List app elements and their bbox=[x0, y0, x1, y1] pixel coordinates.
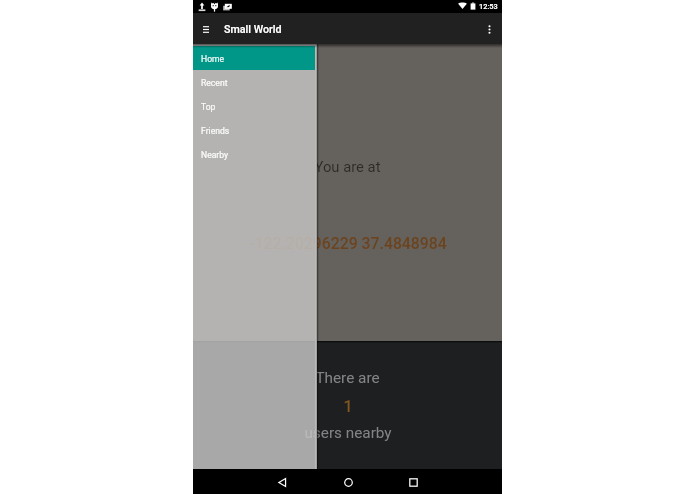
staticText: Home bbox=[201, 54, 225, 64]
button[interactable]: Friends bbox=[193, 118, 315, 142]
button[interactable]: Top bbox=[193, 94, 315, 118]
staticText: 12:53 bbox=[479, 2, 498, 11]
staticText: Top bbox=[201, 102, 216, 112]
staticText: Nearby bbox=[201, 150, 229, 160]
button[interactable]: Recent apps bbox=[402, 469, 424, 494]
staticText: Small World bbox=[224, 23, 282, 36]
button[interactable]: Home bbox=[337, 469, 359, 494]
button[interactable]: Open navigation drawer bbox=[193, 13, 219, 44]
button[interactable]: More options bbox=[477, 13, 502, 44]
button[interactable]: Home bbox=[193, 46, 315, 70]
staticText: You are at bbox=[314, 158, 381, 175]
button[interactable]: Back bbox=[271, 469, 293, 494]
staticText: 1 bbox=[343, 396, 353, 416]
staticText: Friends bbox=[201, 126, 230, 136]
staticText: Recent bbox=[201, 78, 228, 88]
staticText: There are bbox=[315, 369, 380, 387]
staticText: -122.20296229 37.4848984 bbox=[249, 234, 447, 253]
button[interactable]: Nearby bbox=[193, 142, 315, 166]
staticText: users nearby bbox=[304, 424, 392, 442]
button[interactable]: Recent bbox=[193, 70, 315, 94]
